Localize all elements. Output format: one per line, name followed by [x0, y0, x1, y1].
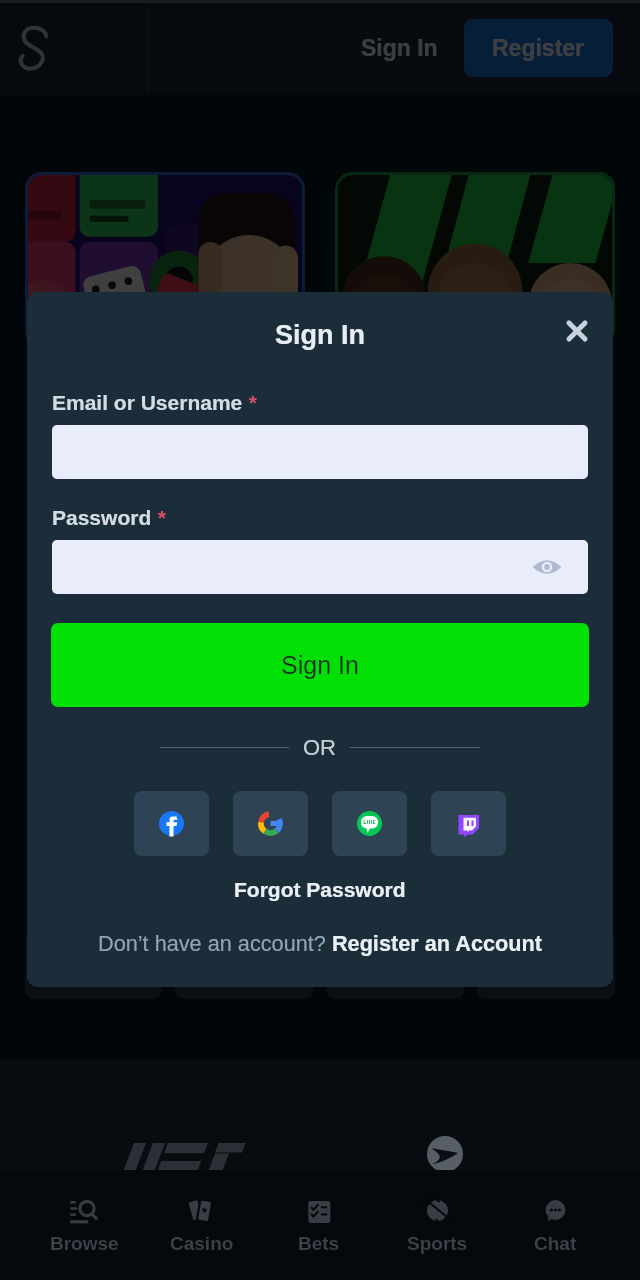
- staticText: Browse: [50, 1233, 119, 1254]
- staticText: Register: [492, 35, 585, 61]
- staticText: Sports: [407, 1233, 468, 1254]
- staticText: Sign In: [27, 320, 613, 350]
- button[interactable]: Casino: [143, 1191, 260, 1260]
- button[interactable]: Close: [553, 307, 601, 355]
- button[interactable]: Register: [464, 19, 613, 77]
- button[interactable]: Don’t have an account? Register an Accou…: [90, 928, 550, 958]
- button[interactable]: Sign in with Twitch: [431, 791, 506, 856]
- button[interactable]: Bets: [260, 1191, 378, 1260]
- staticText: *: [152, 506, 167, 529]
- button[interactable]: Chat: [496, 1191, 614, 1260]
- button[interactable]: Browse: [26, 1191, 143, 1260]
- button[interactable]: Sports: [378, 1191, 496, 1260]
- button[interactable]: Show password: [52, 540, 588, 594]
- staticText: Chat: [534, 1233, 577, 1254]
- button[interactable]: Sign In: [51, 623, 589, 707]
- staticText: Bets: [298, 1233, 340, 1254]
- button[interactable]: Sign In: [343, 25, 456, 71]
- staticText: *: [243, 391, 258, 414]
- staticText: Casino: [170, 1233, 234, 1254]
- button[interactable]: Sign in with Google: [233, 791, 308, 856]
- staticText: Sign In: [361, 35, 438, 61]
- staticText: Don’t have an account? Register an Accou…: [98, 931, 542, 955]
- button[interactable]: Sign in with LINE: [332, 791, 407, 856]
- staticText: Forgot Password: [234, 878, 406, 901]
- staticText: Password: [52, 506, 152, 529]
- button[interactable]: [52, 425, 588, 479]
- staticText: Sign In: [281, 651, 359, 679]
- button[interactable]: Show password: [530, 550, 564, 584]
- staticText: Email or Username: [52, 391, 243, 414]
- button[interactable]: Sign in with Facebook: [134, 791, 209, 856]
- button[interactable]: Forgot Password: [226, 875, 414, 904]
- staticText: OR: [303, 735, 336, 760]
